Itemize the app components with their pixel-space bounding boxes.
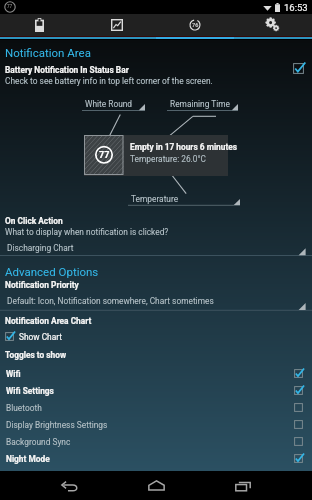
button[interactable]: Wifi Settings <box>0 382 312 399</box>
staticText: Check to see battery info in top left co… <box>5 76 213 86</box>
button[interactable]: Night Mode <box>0 450 312 467</box>
staticText: Notification Area Chart <box>5 316 92 326</box>
button[interactable]: Wifi <box>0 365 312 382</box>
button[interactable]: Background Sync <box>0 433 312 450</box>
staticText: Show Chart <box>19 332 62 342</box>
staticText: Toggles to show <box>5 350 67 360</box>
staticText: Night Mode <box>6 454 294 464</box>
staticText: Wifi <box>6 369 294 379</box>
button[interactable]: Notification main text <box>167 95 228 111</box>
staticText: Remaining Time <box>170 99 231 109</box>
staticText: 77 <box>7 4 13 9</box>
staticText: Temperature <box>131 194 179 204</box>
button[interactable]: Home <box>138 471 174 500</box>
button[interactable]: Notification priority <box>0 292 312 308</box>
staticText: Discharging Chart <box>7 243 74 253</box>
staticText: 76 <box>192 22 199 29</box>
button[interactable]: History chart <box>78 14 156 36</box>
button[interactable]: Back <box>51 471 87 500</box>
staticText: 16:53 <box>284 2 308 13</box>
button[interactable]: Show Chart <box>5 330 62 343</box>
button[interactable]: Battery notification in status bar <box>286 56 310 80</box>
staticText: 77 <box>99 150 110 161</box>
button[interactable]: Battery <box>0 14 78 36</box>
staticText: Advanced Options <box>5 265 99 278</box>
staticText: Battery Notification In Status Bar <box>5 65 129 75</box>
button[interactable]: Notification sub text <box>128 190 176 206</box>
button[interactable]: On click action <box>0 239 312 255</box>
button[interactable]: Battery level <box>156 14 234 36</box>
staticText: Notification Area <box>5 46 91 59</box>
button[interactable]: Recent apps <box>225 471 261 500</box>
staticText: White Round <box>85 99 133 109</box>
staticText: Wifi Settings <box>6 386 294 396</box>
staticText: Temperature: 26.0°C <box>130 154 207 164</box>
staticText: Bluetooth <box>6 403 294 413</box>
staticText: On Click Action <box>5 216 63 226</box>
staticText: Default: Icon, Notification somewhere, C… <box>7 296 214 306</box>
staticText: What to display when notification is cli… <box>5 227 169 237</box>
button[interactable]: Bluetooth <box>0 399 312 416</box>
staticText: Notification Priority <box>5 280 79 290</box>
staticText: Display Brightness Settings <box>6 420 294 430</box>
button[interactable]: Settings <box>234 14 312 36</box>
staticText: Background Sync <box>6 437 294 447</box>
button[interactable]: Notification icon style <box>82 95 130 111</box>
staticText: Empty in 17 hours 6 minutes <box>130 142 238 152</box>
button[interactable]: Display Brightness Settings <box>0 416 312 433</box>
